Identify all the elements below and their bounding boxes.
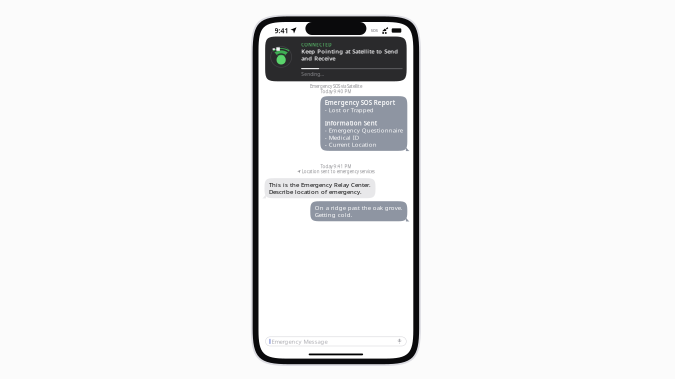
staticText: Emergency SOS Report (325, 99, 395, 106)
staticText: Keep Pointing at Satellite to Send and R… (301, 48, 398, 61)
staticText: Location sent to emergency services (302, 169, 375, 174)
button[interactable]: Emergency Message (265, 337, 406, 346)
staticText: - Current Location (325, 141, 377, 148)
staticText: Information Sent (325, 120, 377, 127)
staticText: - Medical ID (325, 134, 359, 141)
staticText: Describe location of emergency. (269, 188, 362, 195)
staticText: Sending… (301, 71, 324, 77)
staticText: - Emergency Questionnaire (325, 127, 403, 134)
staticText: - Lost or Trapped (325, 106, 374, 113)
staticText: CONNECTED (301, 42, 331, 47)
staticText: Today 9:41 PM (320, 164, 351, 169)
staticText: Getting cold. (315, 211, 353, 218)
staticText: Emergency SOS via Satellite (310, 84, 362, 89)
staticText: This is the Emergency Relay Center. (269, 181, 371, 188)
staticText: Emergency Message (272, 338, 328, 345)
staticText: SOS (371, 28, 378, 33)
staticText: On a ridge past the oak grove. (315, 204, 403, 211)
staticText: Today 9:40 PM (320, 89, 351, 94)
staticText: 9:41 (274, 26, 288, 34)
